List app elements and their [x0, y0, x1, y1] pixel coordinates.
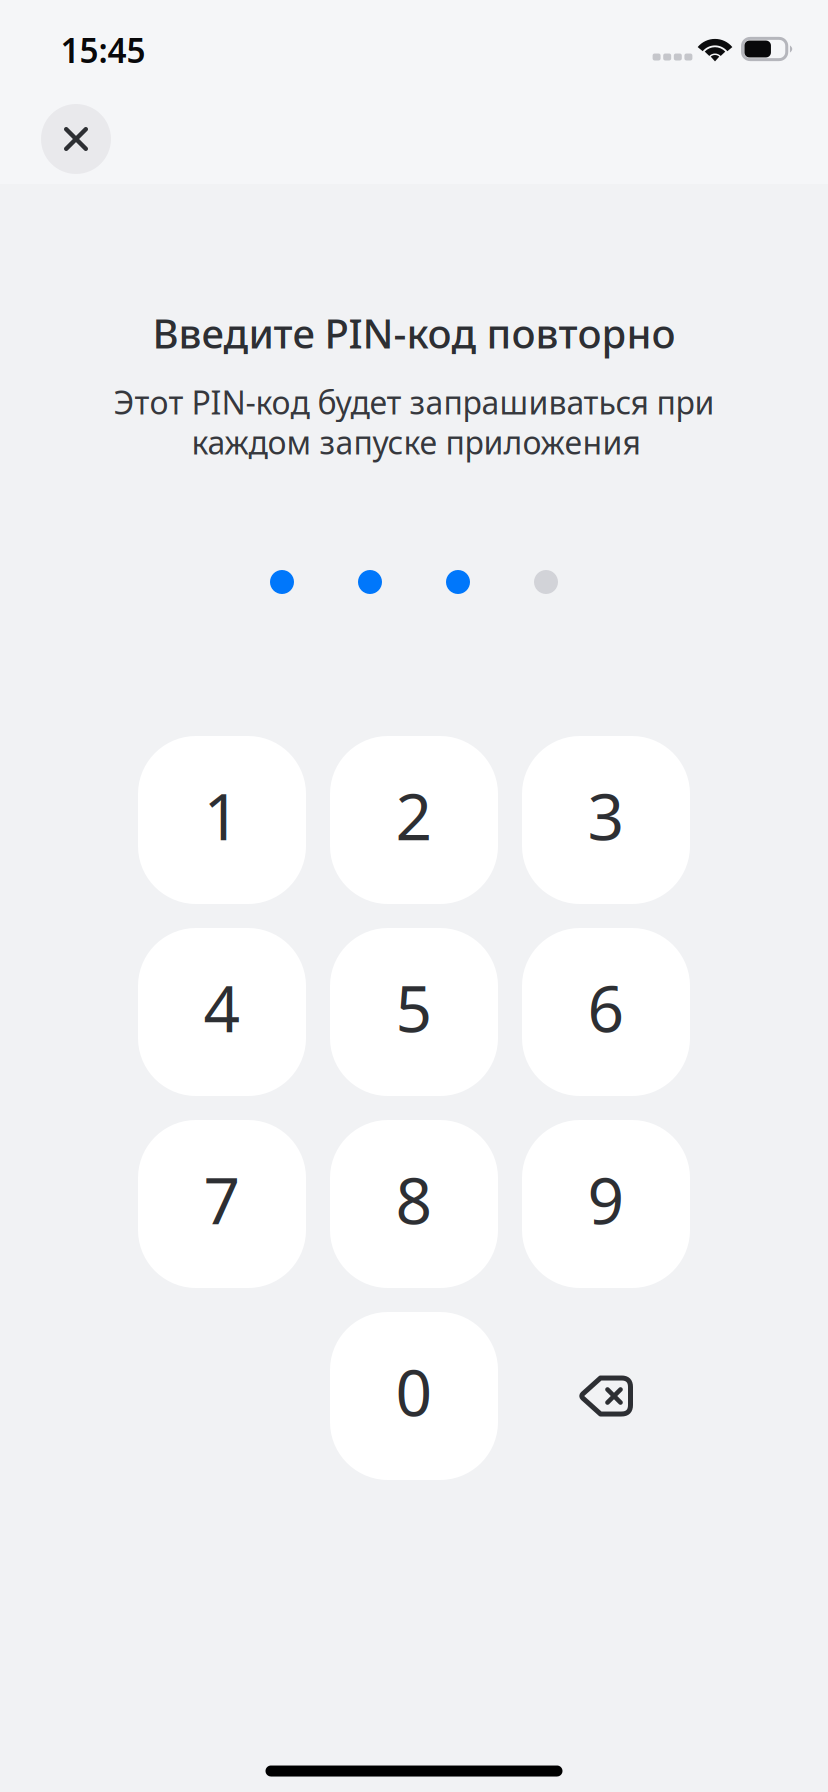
button[interactable]: 7 — [138, 1120, 306, 1288]
button[interactable]: 2 — [330, 736, 498, 904]
staticText: 2 — [395, 773, 432, 858]
button[interactable]: 3 — [522, 736, 690, 904]
button[interactable]: 5 — [330, 928, 498, 1096]
button[interactable]: 9 — [522, 1120, 690, 1288]
staticText: 5 — [395, 965, 432, 1050]
staticText: 1 — [203, 773, 240, 858]
staticText: каждом запуске приложения — [191, 421, 640, 463]
button[interactable]: 1 — [138, 736, 306, 904]
button[interactable]: Удалить — [522, 1312, 690, 1480]
staticText: 4 — [203, 965, 240, 1050]
staticText: 15:45 — [60, 28, 145, 72]
button[interactable]: Закрыть — [41, 104, 111, 174]
staticText: Этот PIN-код будет запрашиваться при — [113, 381, 714, 423]
staticText: 8 — [395, 1157, 432, 1242]
button[interactable]: 8 — [330, 1120, 498, 1288]
staticText: 7 — [203, 1157, 240, 1242]
button[interactable]: 6 — [522, 928, 690, 1096]
staticText: Введите PIN-код повторно — [152, 306, 675, 359]
button[interactable]: 0 — [330, 1312, 498, 1480]
staticText: 9 — [587, 1157, 624, 1242]
staticText: 3 — [587, 773, 624, 858]
button[interactable]: 4 — [138, 928, 306, 1096]
staticText: 6 — [587, 965, 624, 1050]
staticText: 0 — [395, 1349, 432, 1434]
